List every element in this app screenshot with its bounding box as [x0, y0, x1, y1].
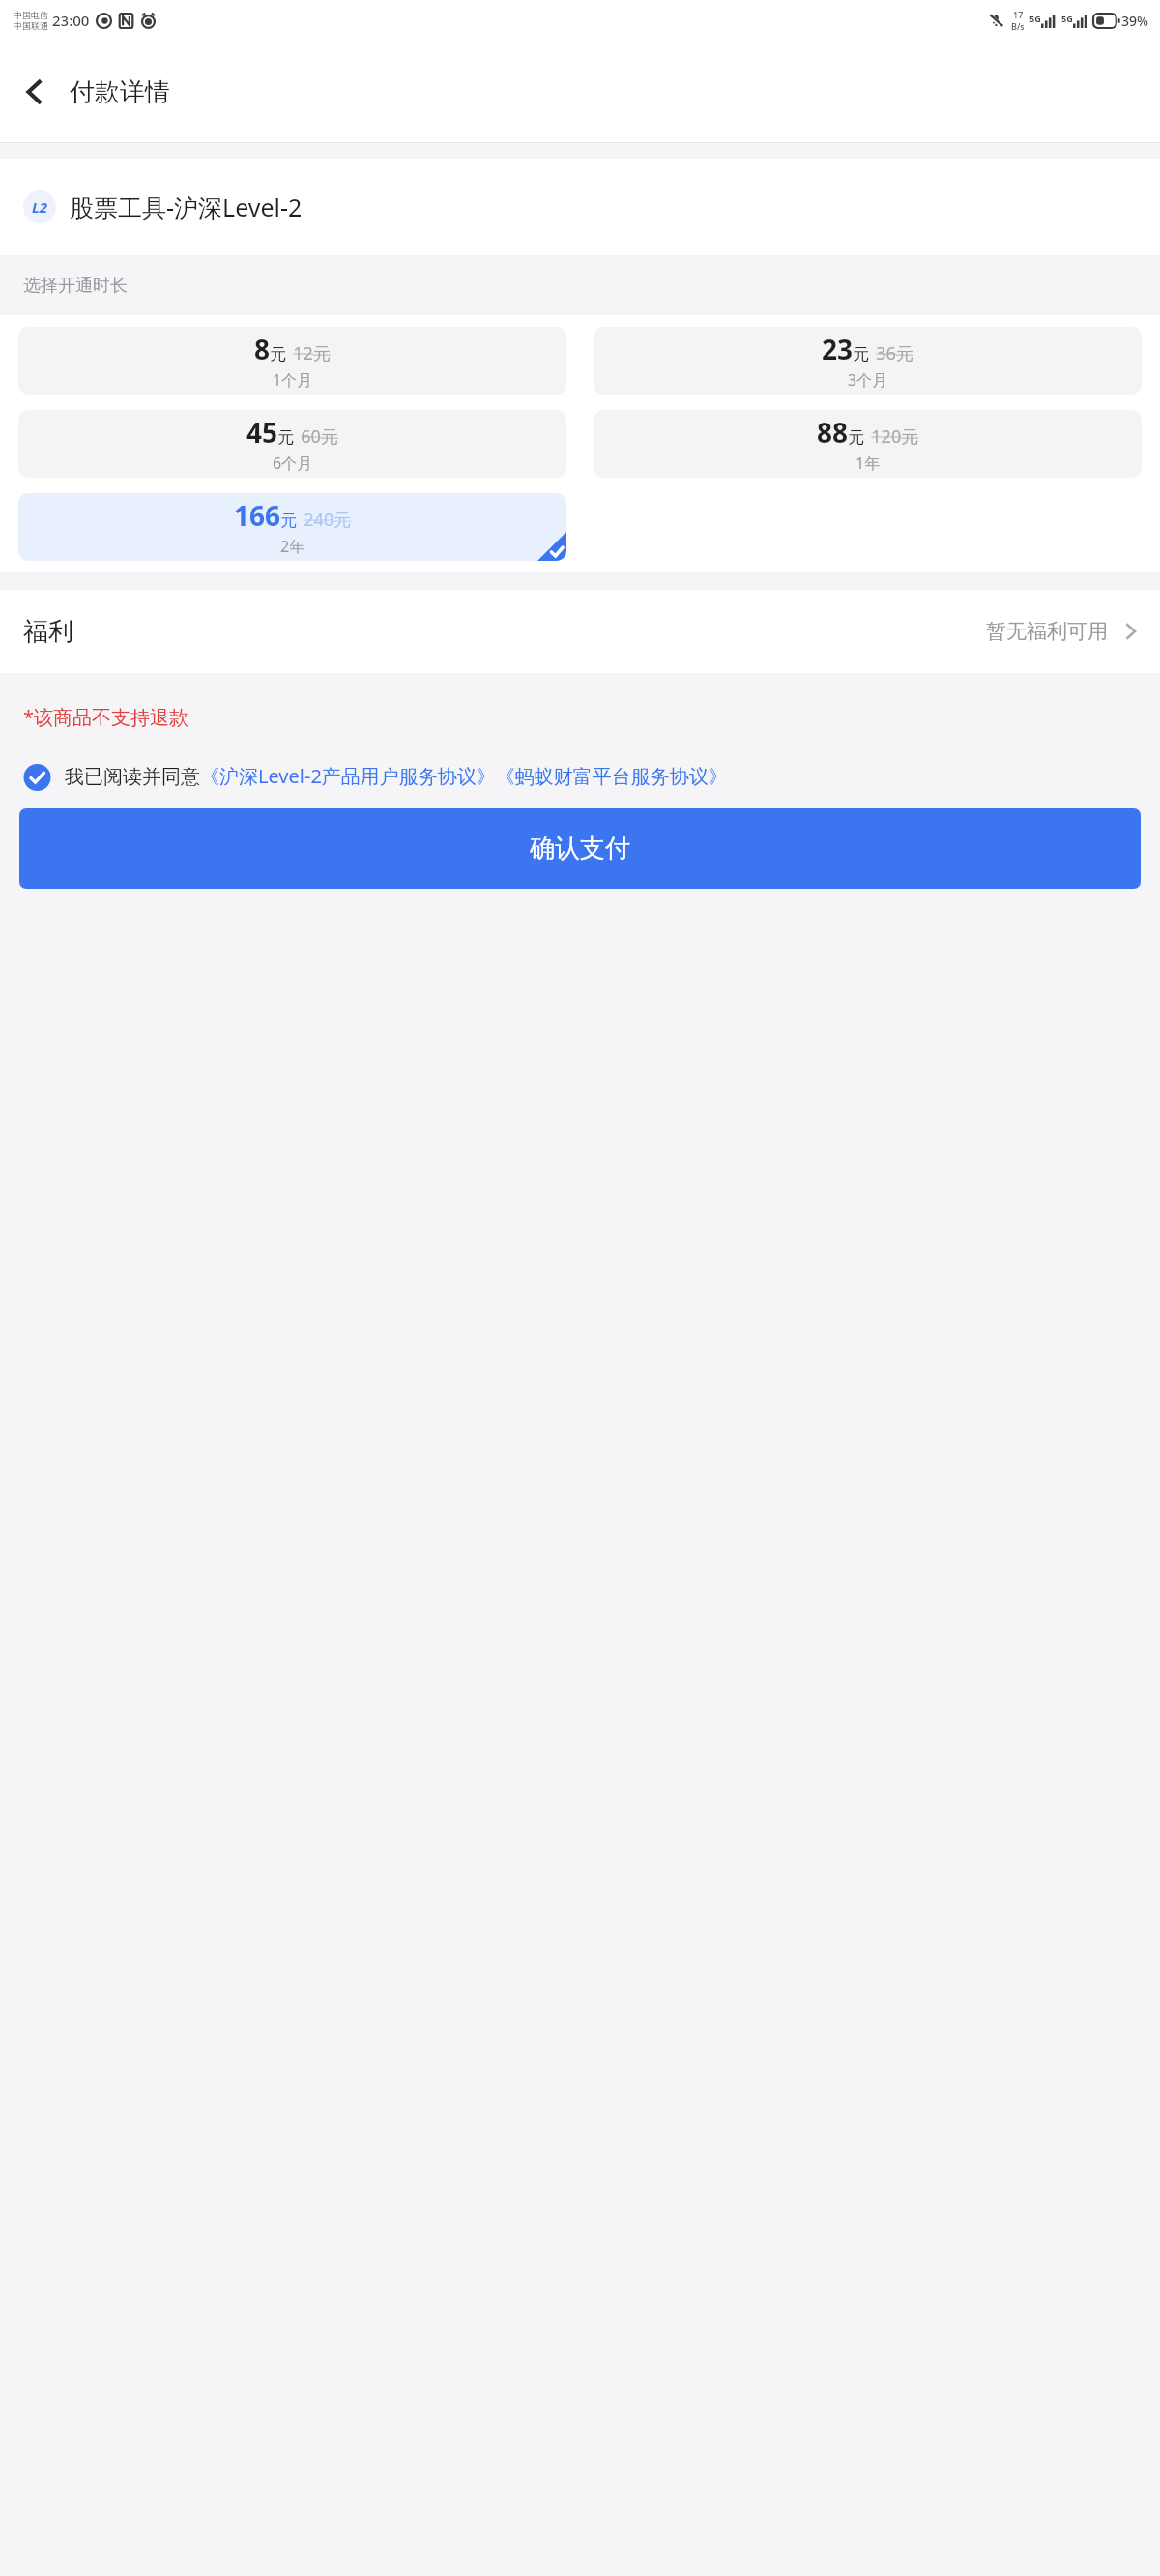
staticText: 股票工具-沪深Level-2 [70, 190, 303, 223]
button[interactable]: 福利 [0, 590, 1160, 673]
staticText: 23:00 [52, 11, 90, 30]
staticText: 8元 12元 [254, 331, 331, 367]
button[interactable]: 45元 60元 [18, 410, 566, 478]
staticText: 5G [1029, 13, 1041, 24]
staticText: 我已阅读并同意《沪深Level-2产品用户服务协议》《蚂蚁财富平台服务协议》 [65, 763, 728, 789]
staticText: 5G [1061, 13, 1073, 24]
staticText: 1年 [855, 453, 881, 474]
staticText: 6个月 [273, 453, 313, 474]
staticText: 福利 [23, 616, 73, 648]
staticText: 暂无福利可用 [986, 619, 1108, 644]
button[interactable]: 166元 240元 [18, 493, 566, 561]
staticText: 中国电信 [14, 10, 48, 20]
staticText: 166元 240元 [234, 497, 352, 534]
staticText: 88元 120元 [817, 414, 919, 451]
button[interactable]: 确认支付 [19, 808, 1141, 889]
staticText: 中国联通 [14, 20, 48, 31]
staticText: 付款详情 [70, 76, 170, 108]
staticText: 确认支付 [530, 833, 630, 864]
staticText: B/s [1011, 20, 1025, 32]
staticText: 3个月 [848, 369, 888, 391]
staticText: 选择开通时长 [23, 275, 128, 297]
staticText: 2年 [280, 536, 305, 557]
staticText: L2 [32, 197, 48, 217]
staticText: 17 [1013, 9, 1024, 20]
staticText: 1个月 [273, 369, 313, 391]
staticText: 23元 36元 [822, 331, 913, 367]
staticText: 39% [1121, 12, 1148, 30]
button[interactable]: 23元 36元 [594, 327, 1142, 395]
staticText: 45元 60元 [246, 414, 338, 451]
button[interactable]: 88元 120元 [594, 410, 1142, 478]
button[interactable]: 我已阅读并同意《沪深Level-2产品用户服务协议》《蚂蚁财富平台服务协议》 [0, 740, 1160, 791]
button[interactable]: Back [0, 57, 70, 127]
button[interactable]: 8元 12元 [18, 327, 566, 395]
staticText: *该商品不支持退款 [23, 704, 189, 730]
